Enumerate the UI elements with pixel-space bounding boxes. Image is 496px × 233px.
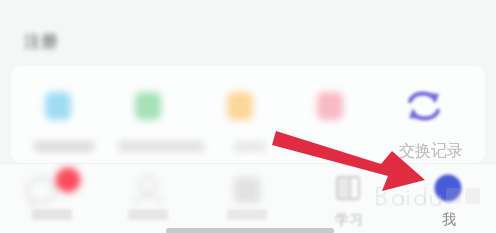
button[interactable]: 发现 bbox=[199, 163, 298, 233]
button[interactable]: 通讯录 bbox=[100, 163, 199, 233]
button[interactable]: 消息 bbox=[0, 163, 100, 233]
staticText: 注册 bbox=[24, 31, 58, 52]
staticText: 我 bbox=[442, 211, 456, 229]
button[interactable]: 待办 bbox=[200, 78, 295, 158]
button[interactable]: 我 bbox=[397, 163, 496, 233]
button[interactable]: 收藏 bbox=[295, 78, 390, 158]
button[interactable]: 交换记录 bbox=[394, 138, 468, 164]
button[interactable]: 学习 bbox=[298, 163, 397, 233]
staticText: 学习 bbox=[335, 211, 363, 229]
button[interactable]: 笔记 bbox=[105, 78, 200, 158]
button[interactable]: 日历 bbox=[11, 78, 105, 158]
button[interactable]: 交换 bbox=[390, 78, 485, 158]
staticText: 交换记录 bbox=[399, 141, 463, 161]
